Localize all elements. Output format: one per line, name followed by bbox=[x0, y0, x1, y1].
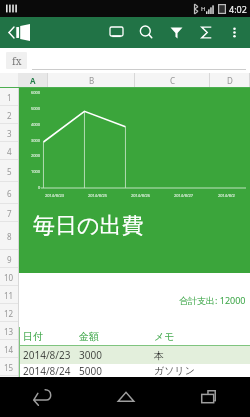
button[interactable]: 日付 bbox=[19, 327, 250, 345]
button[interactable]: 11 bbox=[0, 286, 18, 304]
staticText: 4:02 bbox=[229, 3, 247, 15]
staticText: C bbox=[170, 75, 176, 86]
staticText: 8 bbox=[7, 231, 12, 242]
button[interactable]: A bbox=[18, 73, 48, 87]
button[interactable]: C bbox=[135, 73, 210, 87]
staticText: 14 bbox=[4, 344, 14, 355]
staticText: 2014/8/23 bbox=[45, 193, 64, 198]
staticText: 0 bbox=[38, 185, 41, 190]
button[interactable]: 7 bbox=[0, 204, 18, 222]
button[interactable]: 6 bbox=[0, 182, 18, 204]
button[interactable]: Sheet view bbox=[104, 17, 128, 48]
staticText: 2014/8/2 bbox=[218, 193, 235, 198]
staticText: 2014/8/25 bbox=[88, 193, 107, 198]
button[interactable]: 8 bbox=[0, 222, 18, 250]
button[interactable]: Back bbox=[0, 377, 84, 417]
staticText: 2000 bbox=[31, 153, 41, 158]
staticText: 3 bbox=[7, 128, 12, 139]
staticText: 5000 bbox=[79, 364, 102, 377]
staticText: fx bbox=[12, 54, 22, 68]
staticText: 1 bbox=[7, 92, 12, 103]
staticText: 毎日の出費 bbox=[33, 212, 144, 240]
staticText: メモ bbox=[154, 330, 175, 343]
staticText: 2014/8/27 bbox=[174, 193, 193, 198]
staticText: 7 bbox=[7, 208, 12, 219]
button[interactable]: 12 bbox=[0, 304, 18, 322]
button[interactable]: 15 bbox=[0, 358, 18, 376]
button[interactable]: 3 bbox=[0, 124, 18, 142]
staticText: 5000 bbox=[31, 106, 41, 111]
staticText: 13 bbox=[4, 326, 14, 337]
staticText: 本 bbox=[154, 349, 164, 362]
staticText: B bbox=[89, 75, 95, 86]
button[interactable]: 10 bbox=[0, 268, 18, 286]
staticText: 2 bbox=[7, 110, 12, 121]
staticText: 15 bbox=[4, 362, 14, 373]
staticText: 合計支出: 12000 bbox=[179, 294, 246, 306]
staticText: 4 bbox=[7, 146, 12, 157]
button[interactable]: D bbox=[210, 73, 250, 87]
button[interactable]: 2014/8/23 bbox=[19, 346, 250, 364]
staticText: A bbox=[30, 75, 36, 86]
button[interactable]: Insert function bbox=[6, 52, 27, 69]
button[interactable]: More options bbox=[222, 17, 246, 48]
button[interactable]: 1 bbox=[0, 88, 18, 106]
button[interactable]: 5 bbox=[0, 160, 18, 182]
staticText: 金額 bbox=[79, 330, 99, 343]
staticText: D bbox=[227, 75, 233, 86]
staticText: 4000 bbox=[31, 122, 41, 127]
staticText: 12 bbox=[4, 308, 14, 319]
button[interactable]: AutoSum bbox=[194, 17, 218, 48]
button[interactable]: 2 bbox=[0, 106, 18, 124]
staticText: 10 bbox=[4, 272, 14, 283]
staticText: H bbox=[201, 5, 206, 13]
button[interactable]: B bbox=[48, 73, 135, 87]
staticText: 2014/8/23 bbox=[23, 348, 71, 362]
staticText: 9 bbox=[7, 254, 12, 265]
staticText: 11 bbox=[4, 290, 14, 301]
staticText: 6000 bbox=[31, 90, 41, 95]
button[interactable]: 2014/8/24 bbox=[19, 364, 250, 377]
staticText: 2014/8/24 bbox=[23, 364, 71, 377]
button[interactable]: Back to Office bbox=[0, 17, 38, 48]
staticText: 日付 bbox=[23, 330, 43, 343]
staticText: 3000 bbox=[79, 348, 102, 362]
button[interactable]: 13 bbox=[0, 322, 18, 340]
button[interactable]: 9 bbox=[0, 250, 18, 268]
staticText: ガソリン bbox=[154, 364, 195, 377]
button[interactable]: Search bbox=[134, 17, 158, 48]
staticText: 5 bbox=[7, 166, 12, 177]
staticText: 1000 bbox=[31, 169, 41, 174]
button[interactable]: Home bbox=[84, 377, 167, 417]
staticText: 3000 bbox=[31, 138, 41, 143]
staticText: 2014/8/26 bbox=[131, 193, 150, 198]
button[interactable]: Filter bbox=[164, 17, 188, 48]
button[interactable]: 4 bbox=[0, 142, 18, 160]
button[interactable]: 14 bbox=[0, 340, 18, 358]
staticText: 6 bbox=[7, 188, 12, 199]
button[interactable]: Recent apps bbox=[167, 377, 250, 417]
